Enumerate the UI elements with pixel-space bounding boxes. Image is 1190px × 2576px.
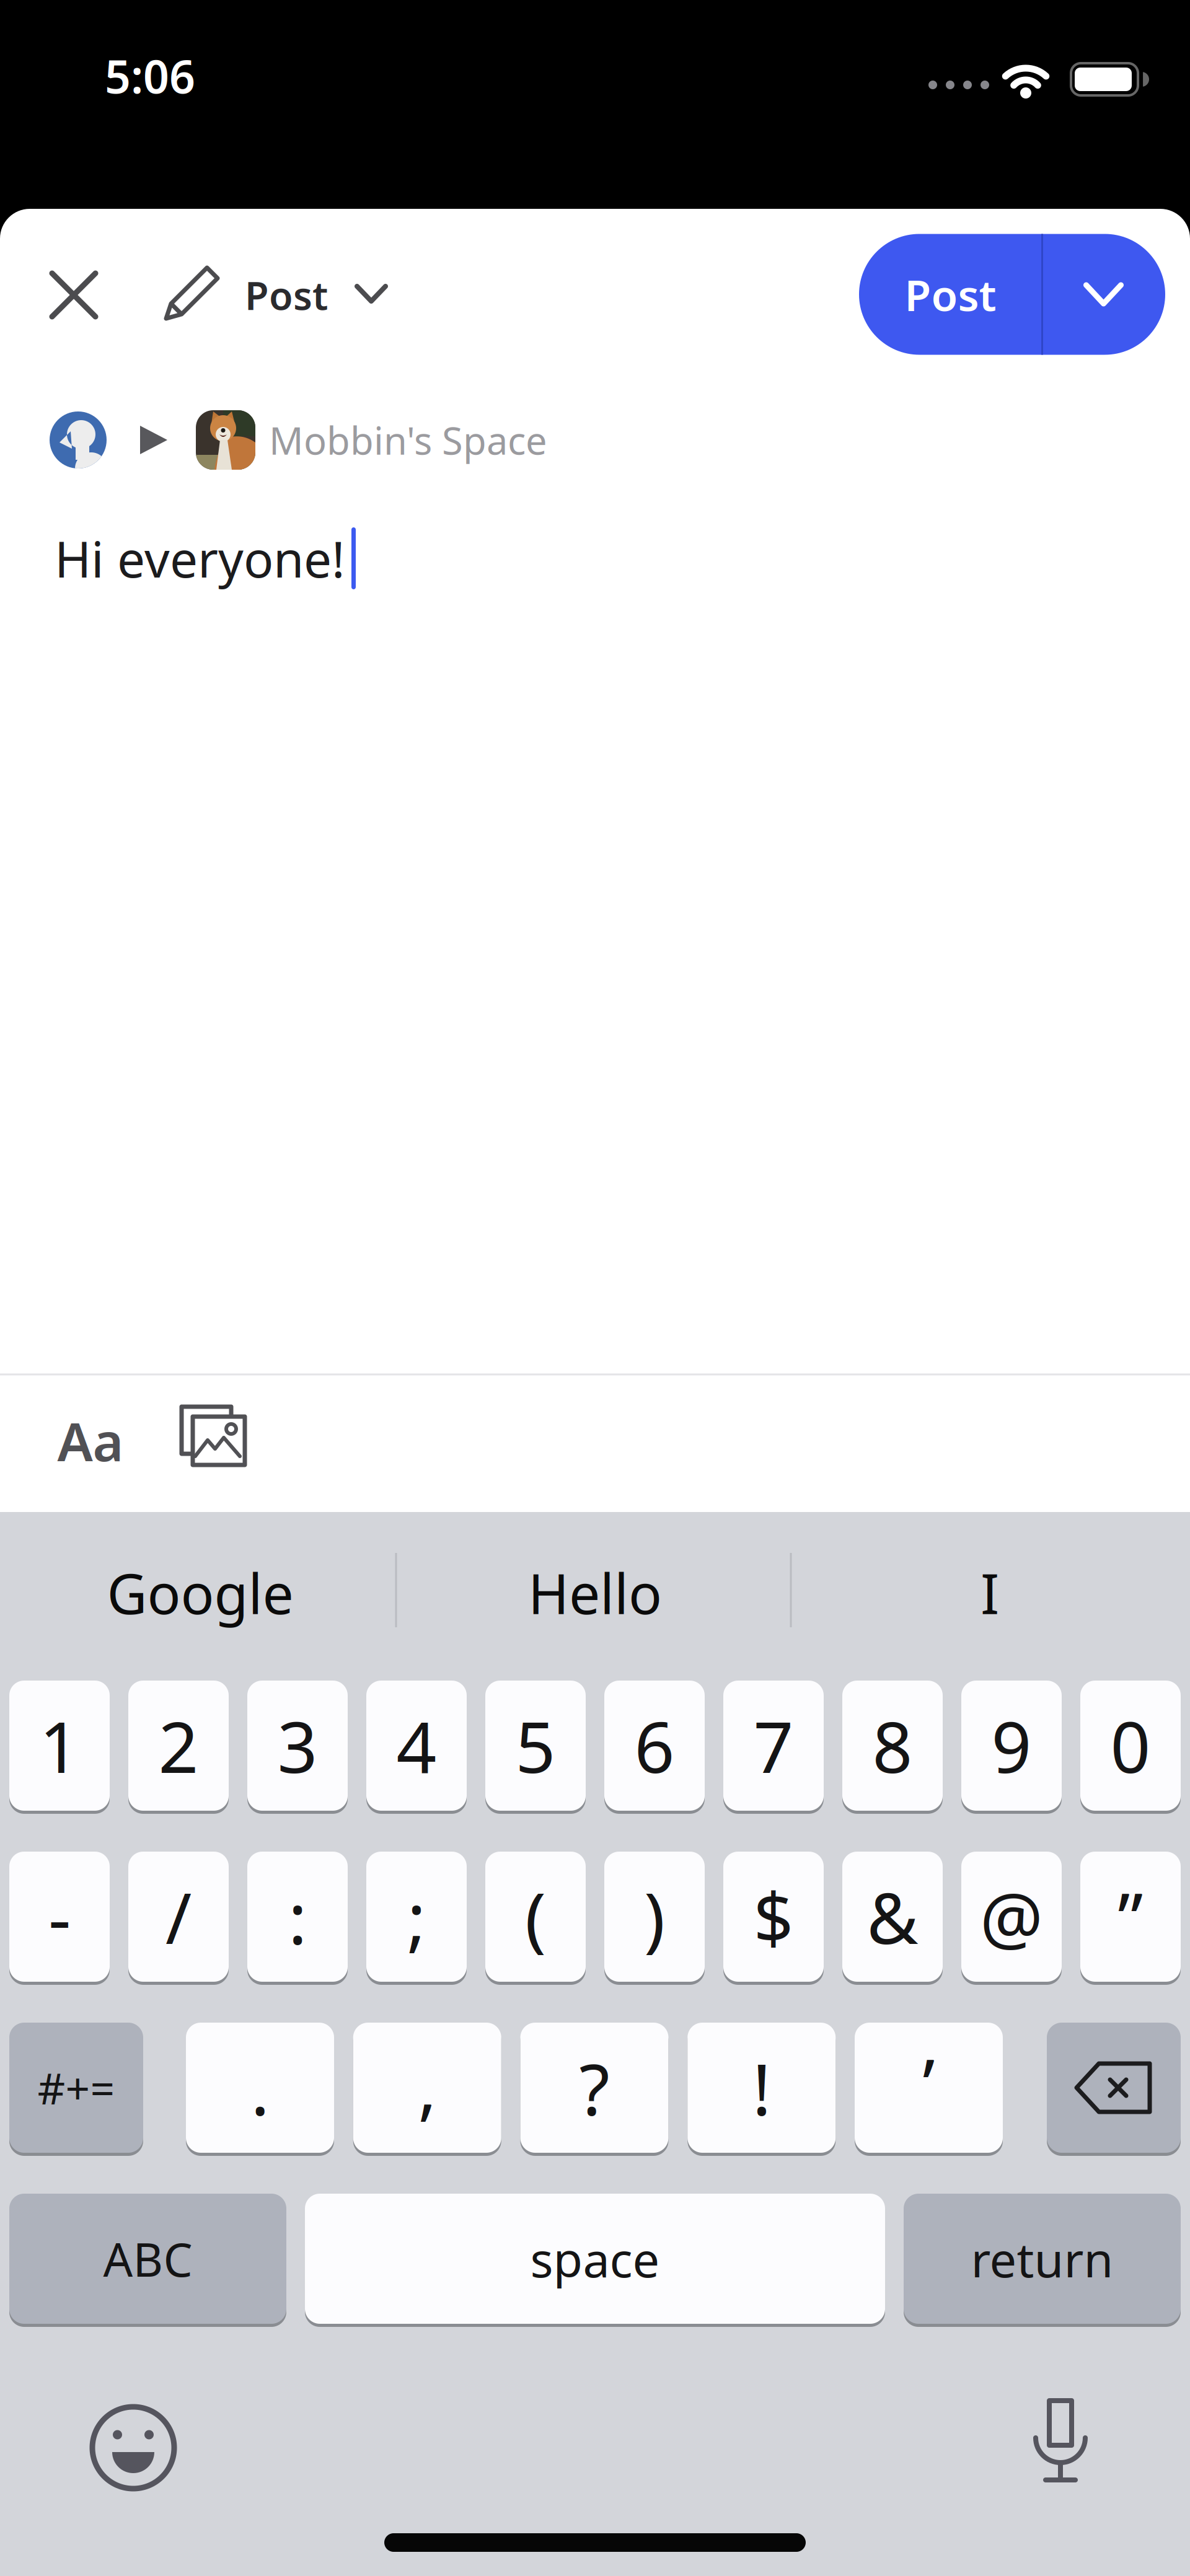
staticText: ? [579, 2041, 610, 2134]
button[interactable]: ” [1080, 1852, 1181, 1982]
button[interactable]: ABC [9, 2194, 286, 2324]
staticText: space [530, 2227, 660, 2291]
button[interactable] [1047, 2023, 1181, 2153]
staticText: 5 [515, 1699, 556, 1792]
staticText: 1 [39, 1699, 80, 1792]
button[interactable]: : [247, 1852, 348, 1982]
button[interactable]: I [804, 1524, 1176, 1661]
staticText: 8 [872, 1699, 913, 1792]
staticText: ABC [103, 2228, 192, 2289]
button[interactable]: return [904, 2194, 1181, 2324]
staticText: Hello [528, 1556, 662, 1629]
button[interactable]: 3 [247, 1681, 348, 1811]
button[interactable]: ? [520, 2023, 668, 2153]
button[interactable] [87, 2401, 180, 2494]
staticText: ( [525, 1870, 546, 1963]
button[interactable]: 2 [128, 1681, 229, 1811]
button[interactable]: Google [14, 1524, 386, 1661]
staticText: Google [107, 1556, 293, 1629]
button[interactable]: 9 [961, 1681, 1062, 1811]
button[interactable]: 5 [485, 1681, 586, 1811]
staticText: @ [980, 1870, 1043, 1963]
staticText: 9 [991, 1699, 1032, 1792]
staticText: - [48, 1870, 71, 1963]
staticText: ) [644, 1870, 665, 1963]
button[interactable] [1042, 234, 1165, 355]
button[interactable]: $ [723, 1852, 824, 1982]
staticText: & [867, 1870, 918, 1963]
button[interactable]: ; [366, 1852, 467, 1982]
button[interactable]: ’ [855, 2023, 1003, 2153]
button[interactable]: . [186, 2023, 334, 2153]
staticText: ; [407, 1870, 426, 1963]
button[interactable]: - [9, 1852, 110, 1982]
staticText: 7 [753, 1699, 794, 1792]
staticText: Mobbin's Space [269, 415, 547, 465]
button[interactable]: Aa [47, 1404, 134, 1478]
staticText: Hi everyone! [55, 525, 345, 591]
button[interactable]: 4 [366, 1681, 467, 1811]
button[interactable]: ! [687, 2023, 836, 2153]
button[interactable]: space [305, 2194, 885, 2324]
staticText: Post [245, 269, 328, 321]
staticText: ! [752, 2041, 771, 2134]
button[interactable]: & [842, 1852, 943, 1982]
button[interactable]: Post [162, 257, 423, 333]
staticText: 6 [634, 1699, 675, 1792]
button[interactable]: ) [604, 1852, 705, 1982]
button[interactable]: 6 [604, 1681, 705, 1811]
staticText: 2 [158, 1699, 199, 1792]
button[interactable]: 8 [842, 1681, 943, 1811]
staticText: . [251, 2041, 269, 2134]
button[interactable]: Mobbin's Space [50, 409, 595, 471]
staticText: 3 [277, 1699, 318, 1792]
staticText: : [288, 1870, 307, 1963]
button[interactable]: , [353, 2023, 501, 2153]
button[interactable]: Hello [409, 1524, 781, 1661]
staticText: / [165, 1870, 192, 1963]
staticText: I [981, 1556, 999, 1629]
button[interactable] [177, 1402, 257, 1476]
staticText: ” [1118, 1870, 1143, 1963]
staticText: Aa [57, 1406, 124, 1476]
staticText: 5:06 [105, 45, 195, 106]
staticText: 0 [1110, 1699, 1151, 1792]
button[interactable]: #+= [9, 2023, 143, 2153]
staticText: #+= [37, 2059, 115, 2116]
button[interactable]: 7 [723, 1681, 824, 1811]
staticText: ’ [923, 2036, 935, 2129]
staticText: Post [905, 266, 996, 323]
button[interactable] [40, 261, 108, 329]
staticText: $ [753, 1870, 794, 1963]
button[interactable] [1013, 2397, 1106, 2496]
button[interactable]: ( [485, 1852, 586, 1982]
button[interactable]: Post [859, 234, 1042, 355]
button[interactable]: / [128, 1852, 229, 1982]
staticText: 4 [396, 1699, 437, 1792]
staticText: , [418, 2039, 436, 2132]
button[interactable]: 1 [9, 1681, 110, 1811]
button[interactable]: @ [961, 1852, 1062, 1982]
button[interactable]: 0 [1080, 1681, 1181, 1811]
staticText: return [971, 2227, 1113, 2291]
